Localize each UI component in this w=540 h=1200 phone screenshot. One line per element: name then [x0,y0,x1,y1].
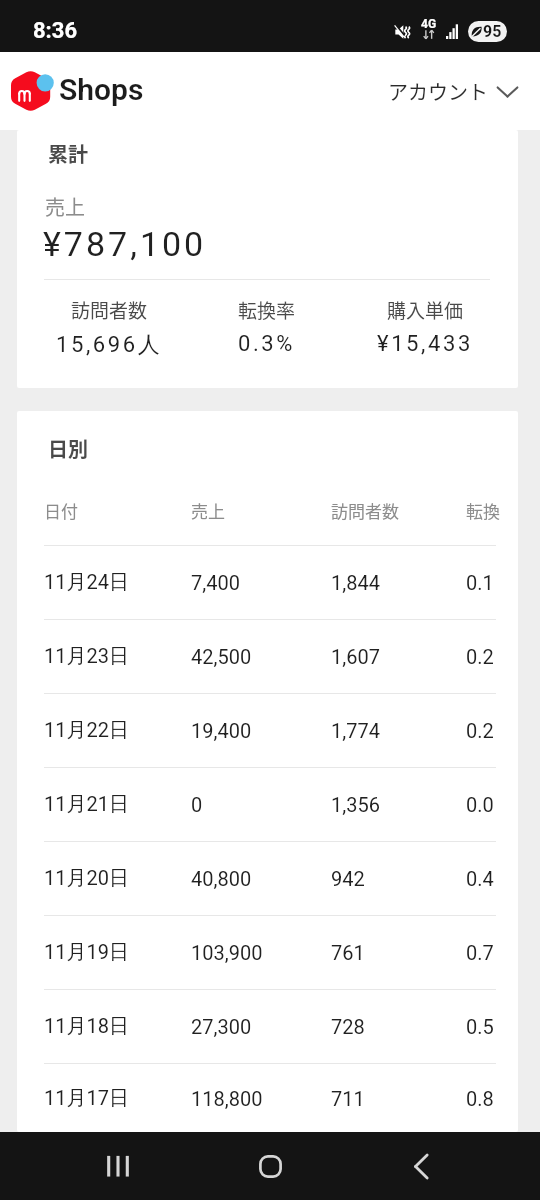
staticText: 0.3% [238,331,296,357]
staticText: 0.2 [466,719,494,742]
staticText: 761 [331,941,466,964]
staticText: 売上 [191,498,331,523]
staticText: 転換率 [238,296,296,324]
staticText: 11月22日 [44,718,191,743]
staticText: 4G [421,17,437,31]
button[interactable]: 11月19日 [17,916,513,989]
staticText: 日付 [44,498,191,523]
staticText: 0.0 [466,793,494,816]
staticText: 728 [331,1015,466,1038]
button[interactable]: 11月17日 [17,1064,513,1132]
staticText: 42,500 [191,645,331,668]
staticText: 1,844 [331,571,466,594]
button[interactable]: 11月21日 [17,768,513,841]
staticText: 0.1 [466,571,494,594]
button[interactable]: Home [234,1132,306,1200]
staticText: 転換率 [466,498,513,523]
staticText: 95 [483,22,502,41]
staticText: ¥15,433 [377,331,473,357]
staticText: 訪問者数 [71,296,148,324]
staticText: 11月17日 [44,1086,191,1111]
staticText: 0.2 [466,645,494,668]
staticText: ¥787,100 [43,224,207,264]
button[interactable]: 11月20日 [17,842,513,915]
staticText: Shops [59,72,144,107]
staticText: 942 [331,867,466,890]
staticText: 15,696人 [56,331,163,359]
staticText: 11月18日 [44,1014,191,1039]
staticText: 11月19日 [44,940,191,965]
staticText: 103,900 [191,941,331,964]
staticText: 0 [191,793,331,816]
staticText: 累計 [48,139,88,168]
staticText: 0.4 [466,867,494,890]
staticText: 27,300 [191,1015,331,1038]
staticText: 0.8 [466,1087,494,1110]
staticText: 0.7 [466,941,494,964]
staticText: 8:36 [33,18,78,44]
button[interactable]: 11月24日 [17,546,513,619]
staticText: 購入単価 [387,296,464,324]
button[interactable]: アカウント [388,77,518,106]
staticText: 11月20日 [44,866,191,891]
staticText: 11月21日 [44,792,191,817]
staticText: 1,356 [331,793,466,816]
staticText: 11月24日 [44,570,191,595]
staticText: 1,607 [331,645,466,668]
button[interactable]: 11月18日 [17,990,513,1063]
button[interactable]: Shops [11,70,144,112]
button[interactable]: 11月23日 [17,620,513,693]
staticText: アカウント [388,77,488,106]
staticText: 0.5 [466,1015,494,1038]
staticText: 日別 [48,434,88,463]
staticText: 19,400 [191,719,331,742]
staticText: 118,800 [191,1087,331,1110]
button[interactable]: Recent apps [82,1132,154,1200]
button[interactable]: 11月22日 [17,694,513,767]
staticText: 711 [331,1087,466,1110]
staticText: 11月23日 [44,644,191,669]
staticText: 40,800 [191,867,331,890]
staticText: 7,400 [191,571,331,594]
staticText: 売上 [45,192,85,221]
button[interactable]: Back [385,1132,457,1200]
staticText: 訪問者数 [331,498,466,523]
staticText: 1,774 [331,719,466,742]
